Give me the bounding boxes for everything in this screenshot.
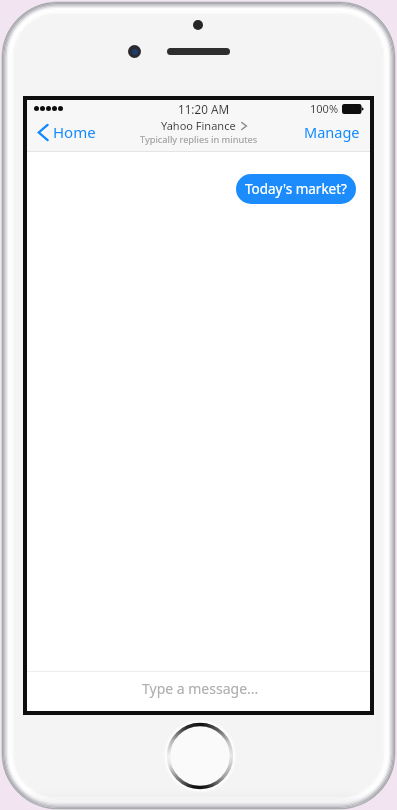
button[interactable]: Today's market?: [236, 174, 356, 204]
staticText: Yahoo Finance: [161, 118, 236, 133]
button[interactable]: Yahoo Finance: [150, 118, 247, 133]
staticText: Manage: [304, 122, 360, 142]
staticText: 100%: [310, 101, 339, 116]
button[interactable]: Manage: [294, 121, 370, 147]
staticText: Today's market?: [245, 180, 347, 198]
button[interactable]: Home: [27, 121, 106, 147]
staticText: Type a message...: [142, 679, 259, 698]
staticText: 11:20 AM: [178, 101, 229, 117]
staticText: Typically replies in minutes: [140, 133, 258, 146]
button[interactable]: Type a message...: [27, 671, 370, 711]
staticText: Home: [53, 122, 96, 142]
button[interactable]: Home button: [163, 719, 237, 793]
